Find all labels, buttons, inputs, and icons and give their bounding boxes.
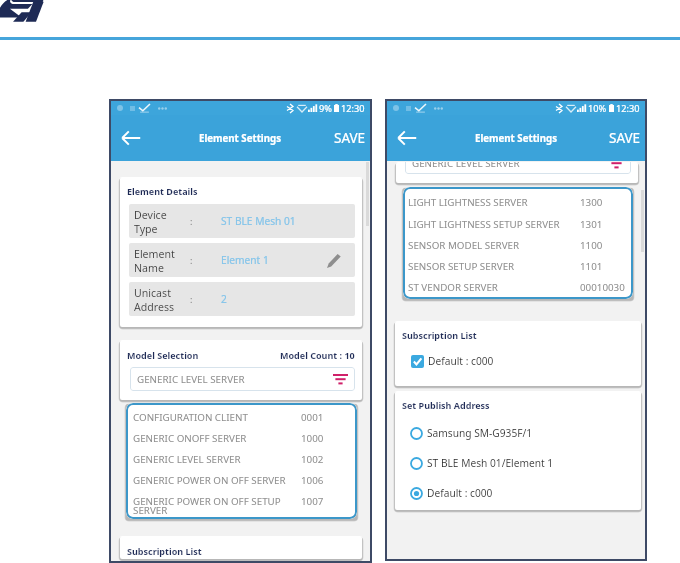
staticText: 1000 bbox=[301, 432, 324, 445]
staticText: GENERIC ONOFF SERVER bbox=[133, 432, 247, 445]
staticText: 1002 bbox=[301, 453, 324, 466]
staticText: SAVE bbox=[609, 129, 641, 147]
staticText: Element Settings bbox=[475, 132, 558, 145]
button[interactable]: SAVE bbox=[609, 129, 641, 147]
staticText: 1101 bbox=[580, 260, 603, 273]
staticText: Subscription List bbox=[402, 329, 477, 341]
staticText: 1007 bbox=[301, 495, 324, 508]
staticText: Subscription List bbox=[127, 545, 202, 557]
staticText: 1300 bbox=[580, 196, 603, 209]
button[interactable]: Back bbox=[396, 127, 418, 149]
staticText: 9% bbox=[319, 102, 332, 115]
staticText: 1006 bbox=[301, 474, 324, 487]
staticText: Element Details bbox=[127, 185, 198, 197]
staticText: ST BLE Mesh 01 bbox=[221, 214, 296, 228]
staticText: Samsung SM-G935F/1 bbox=[427, 426, 533, 440]
button[interactable]: Unicast bbox=[129, 282, 355, 316]
staticText: 12:30 bbox=[616, 102, 640, 115]
staticText: Name bbox=[134, 261, 164, 275]
staticText: SERVER bbox=[133, 504, 168, 517]
staticText: Default : c000 bbox=[427, 486, 493, 500]
staticText: : bbox=[190, 293, 193, 305]
staticText: GENERIC POWER ON OFF SETUP bbox=[133, 495, 281, 508]
staticText: SENSOR MODEL SERVER bbox=[408, 239, 520, 252]
staticText: 10% bbox=[588, 102, 607, 115]
staticText: Set Publish Address bbox=[402, 399, 490, 411]
button[interactable]: Device bbox=[129, 204, 355, 238]
staticText: Type bbox=[134, 222, 158, 236]
button[interactable]: CONFIGURATION CLIENT bbox=[133, 409, 355, 425]
staticText: : bbox=[190, 254, 193, 266]
button[interactable]: GENERIC LEVEL SERVER bbox=[133, 451, 355, 467]
button[interactable]: ST BLE Mesh 01/Element 1 bbox=[410, 456, 620, 470]
staticText: Default : c000 bbox=[428, 354, 494, 368]
button[interactable]: GENERIC POWER ON OFF SETUP bbox=[133, 493, 355, 509]
staticText: LIGHT LIGHTNESS SERVER bbox=[408, 196, 528, 209]
button[interactable]: Element bbox=[129, 243, 355, 277]
staticText: Element bbox=[134, 247, 175, 261]
button[interactable]: ST VENDOR SERVER bbox=[408, 279, 630, 295]
staticText: GENERIC LEVEL SERVER bbox=[133, 453, 241, 466]
staticText: 00010030 bbox=[580, 281, 625, 294]
staticText: 0001 bbox=[301, 411, 324, 424]
button[interactable]: SENSOR MODEL SERVER bbox=[408, 237, 630, 253]
button[interactable]: GENERIC ONOFF SERVER bbox=[133, 430, 355, 446]
staticText: CONFIGURATION CLIENT bbox=[133, 411, 248, 424]
button[interactable]: GENERIC LEVEL SERVER bbox=[130, 367, 355, 391]
staticText: GENERIC LEVEL SERVER bbox=[137, 373, 245, 386]
button[interactable]: Default : c000 bbox=[411, 354, 494, 368]
button[interactable]: SAVE bbox=[334, 129, 366, 147]
staticText: Device bbox=[134, 208, 167, 222]
staticText: 1301 bbox=[580, 218, 603, 231]
staticText: 12:30 bbox=[341, 102, 365, 115]
staticText: ST VENDOR SERVER bbox=[408, 281, 498, 294]
button[interactable]: GENERIC POWER ON OFF SERVER bbox=[133, 472, 355, 488]
staticText: 2 bbox=[221, 292, 227, 306]
button[interactable]: Default : c000 bbox=[410, 486, 620, 500]
staticText: Model Count : 10 bbox=[280, 349, 355, 361]
staticText: : bbox=[190, 215, 193, 227]
button[interactable]: Back bbox=[120, 127, 142, 149]
button[interactable]: LIGHT LIGHTNESS SERVER bbox=[408, 194, 630, 210]
button[interactable]: SENSOR SETUP SERVER bbox=[408, 258, 630, 274]
staticText: Model Selection bbox=[127, 349, 199, 361]
staticText: Element Settings bbox=[199, 132, 282, 145]
staticText: Unicast bbox=[134, 286, 171, 300]
staticText: 1100 bbox=[580, 239, 603, 252]
staticText: GENERIC LEVEL SERVER bbox=[412, 162, 520, 170]
staticText: SENSOR SETUP SERVER bbox=[408, 260, 515, 273]
staticText: LIGHT LIGHTNESS SETUP SERVER bbox=[408, 218, 560, 231]
button[interactable]: Samsung SM-G935F/1 bbox=[410, 426, 620, 440]
button[interactable]: LIGHT LIGHTNESS SETUP SERVER bbox=[408, 216, 630, 232]
staticText: SAVE bbox=[334, 129, 366, 147]
staticText: Element 1 bbox=[221, 253, 269, 267]
staticText: Address bbox=[134, 300, 175, 314]
staticText: ST BLE Mesh 01/Element 1 bbox=[427, 456, 554, 470]
staticText: GENERIC POWER ON OFF SERVER bbox=[133, 474, 286, 487]
